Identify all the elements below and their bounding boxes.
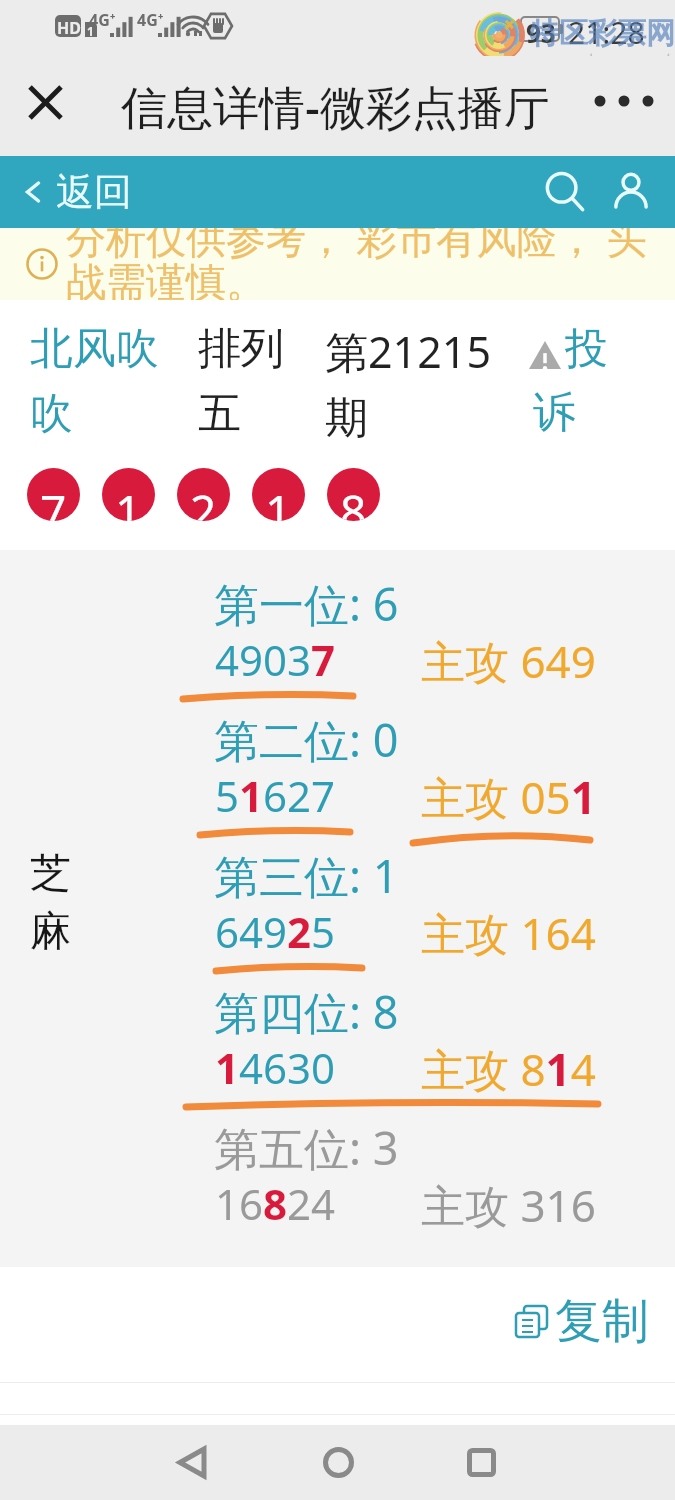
staticText: 16824: [215, 1175, 336, 1232]
button[interactable]: 返回: [22, 168, 132, 216]
staticText: 主攻 051: [421, 767, 596, 827]
staticText: www.tqcp.net: [531, 44, 674, 74]
staticText: 49037: [215, 631, 336, 688]
button[interactable]: Search: [537, 164, 593, 220]
staticText: 1: [87, 23, 94, 39]
button[interactable]: 投: [527, 322, 570, 376]
button[interactable]: Back: [152, 1425, 232, 1500]
staticText: 复制: [555, 1292, 649, 1351]
staticText: 4G⁺: [137, 9, 164, 31]
staticText: 第四位: 8: [214, 981, 399, 1042]
staticText: 诉: [533, 386, 576, 440]
staticText: 主攻 164: [421, 903, 596, 963]
staticText: 主攻 316: [421, 1175, 596, 1235]
staticText: 51627: [215, 767, 336, 824]
staticText: 分析仅供参考， 彩市有风险， 头: [66, 228, 647, 265]
staticText: 1: [115, 480, 142, 521]
staticText: 21:28: [568, 12, 645, 53]
staticText: 7: [40, 480, 67, 521]
button[interactable]: Close: [13, 70, 77, 134]
staticText: 返回: [56, 168, 132, 216]
staticText: 信息详情-微彩点播厅: [121, 75, 550, 138]
staticText: 2: [190, 480, 217, 521]
staticText: 第五位: 3: [214, 1117, 399, 1178]
staticText: 8: [340, 480, 367, 521]
staticText: 93: [526, 15, 556, 50]
staticText: 投: [565, 322, 608, 376]
staticText: 第二位: 0: [214, 709, 399, 770]
staticText: 主攻 649: [421, 631, 596, 691]
staticText: 排列 五: [198, 322, 284, 441]
staticText: HD: [57, 17, 81, 39]
staticText: 主攻 814: [421, 1039, 596, 1099]
staticText: 4G⁺: [89, 9, 116, 31]
button[interactable]: 复制: [515, 1292, 649, 1351]
staticText: 64925: [215, 903, 336, 960]
staticText: 第三位: 1: [214, 845, 399, 906]
staticText: 14630: [215, 1039, 336, 1096]
button[interactable]: Account: [603, 164, 659, 220]
staticText: 特区彩票网: [530, 15, 675, 52]
staticText: 第21215 期: [325, 322, 491, 445]
button[interactable]: Home: [298, 1425, 378, 1500]
button[interactable]: More options: [589, 71, 659, 141]
staticText: 1: [265, 480, 292, 521]
staticText: 战需谨慎。: [66, 257, 266, 300]
staticText: 第一位: 6: [214, 573, 399, 634]
staticText: 北风吹 吹: [30, 322, 159, 441]
staticText: 芝 麻: [30, 848, 71, 957]
button[interactable]: Recents: [441, 1425, 521, 1500]
